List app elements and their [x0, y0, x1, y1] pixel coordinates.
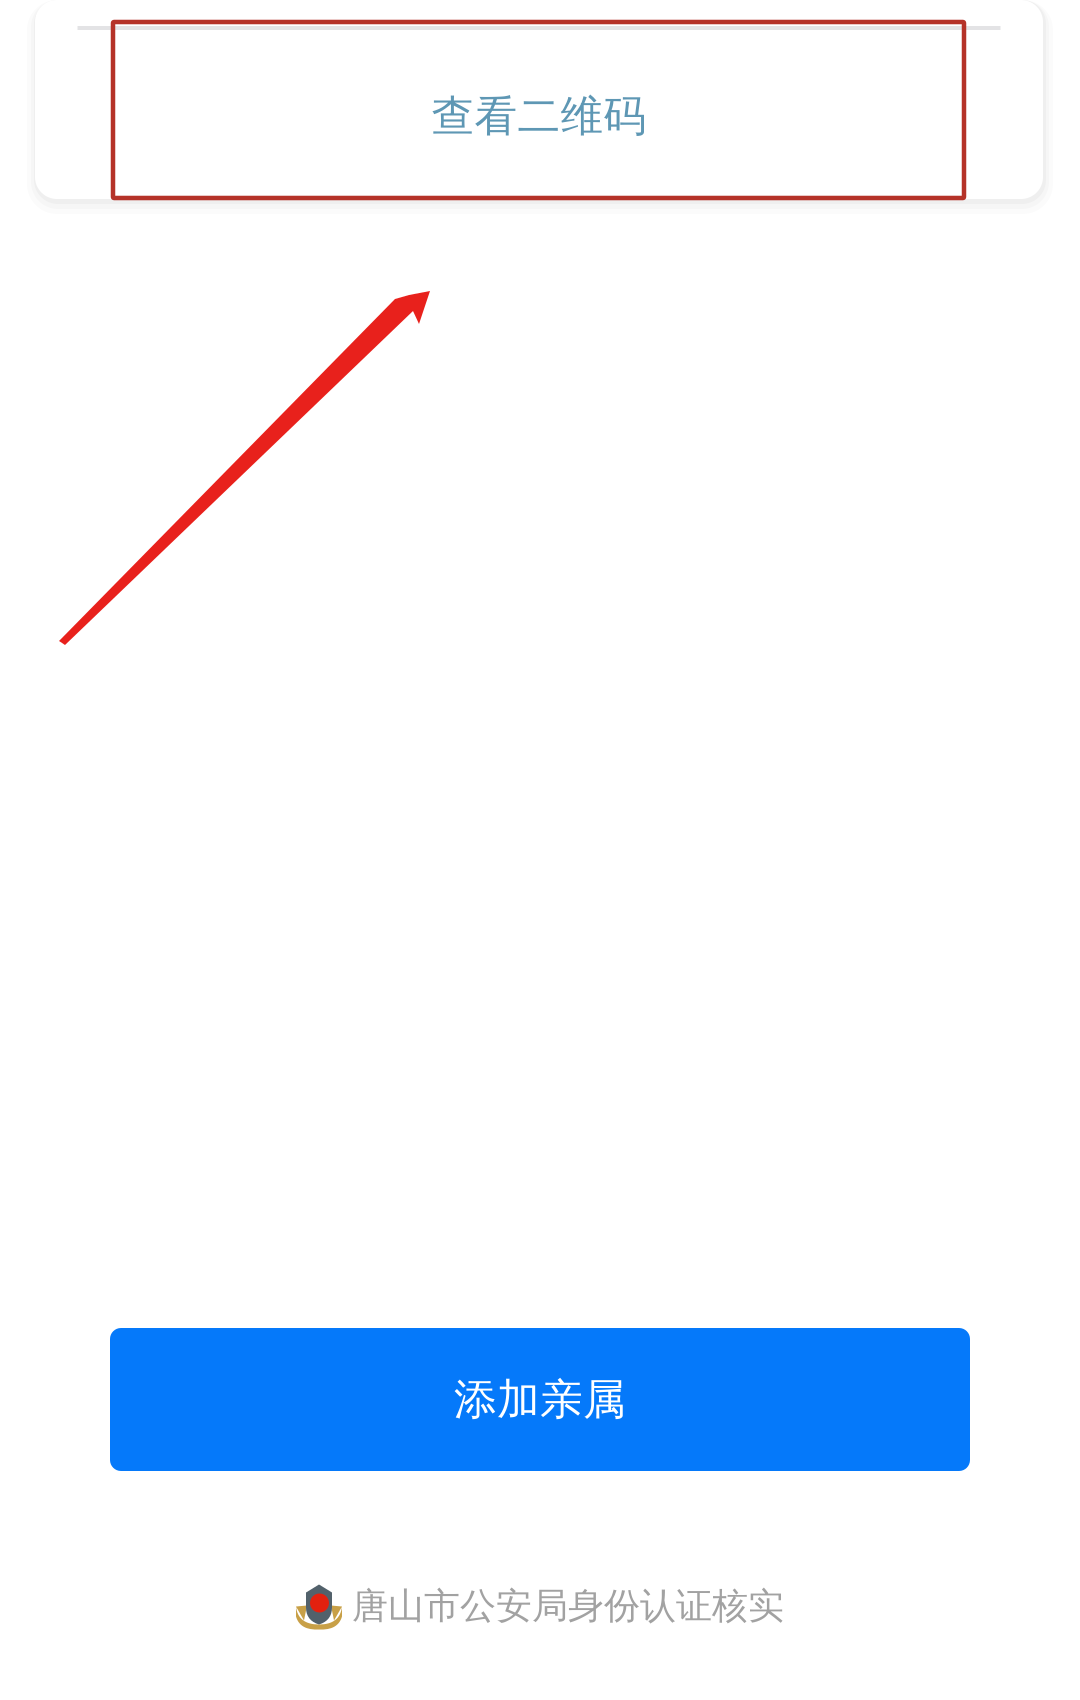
button[interactable]: 查看二维码: [35, 0, 1043, 199]
staticText: 添加亲属: [454, 1373, 626, 1426]
staticText: 唐山市公安局身份认证核实: [352, 1584, 784, 1628]
staticText: 查看二维码: [431, 90, 646, 142]
button[interactable]: 添加亲属: [110, 1328, 970, 1471]
